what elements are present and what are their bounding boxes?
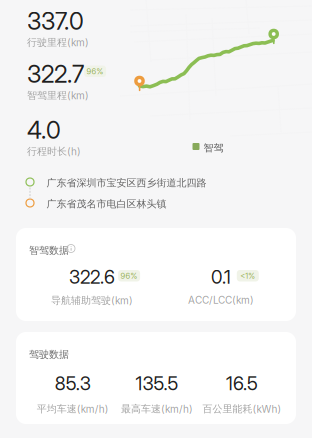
staticText: 智驾 [203,141,223,154]
staticText: 85.3 [55,372,91,395]
staticText: 广东省茂名市电白区林头镇 [46,197,166,210]
staticText: 百公里能耗(kWh) [202,402,281,415]
staticText: 广东省深圳市宝安区西乡街道北四路 [46,176,206,189]
staticText: 智驾里程(km) [27,89,89,102]
staticText: 智驾数据 [29,244,69,257]
staticText: ACC/LCC(km) [188,294,254,306]
staticText: 16.5 [226,372,258,395]
staticText: 最高车速(km/h) [121,402,193,415]
staticText: 驾驶数据 [29,348,69,361]
staticText: 96% [87,66,104,76]
staticText: 行驶里程(km) [27,36,89,49]
staticText: 337.0 [27,6,84,35]
staticText: 96% [121,271,138,281]
staticText: 0.1 [211,266,231,288]
staticText: 135.5 [135,372,178,395]
staticText: 平均车速(km/h) [37,402,109,415]
staticText: 4.0 [27,115,61,144]
staticText: 322.7 [27,59,84,88]
staticText: 行程时长(h) [27,145,81,158]
staticText: 导航辅助驾驶(km) [51,294,133,307]
staticText: 322.6 [69,266,115,288]
staticText: <1% [240,271,255,281]
